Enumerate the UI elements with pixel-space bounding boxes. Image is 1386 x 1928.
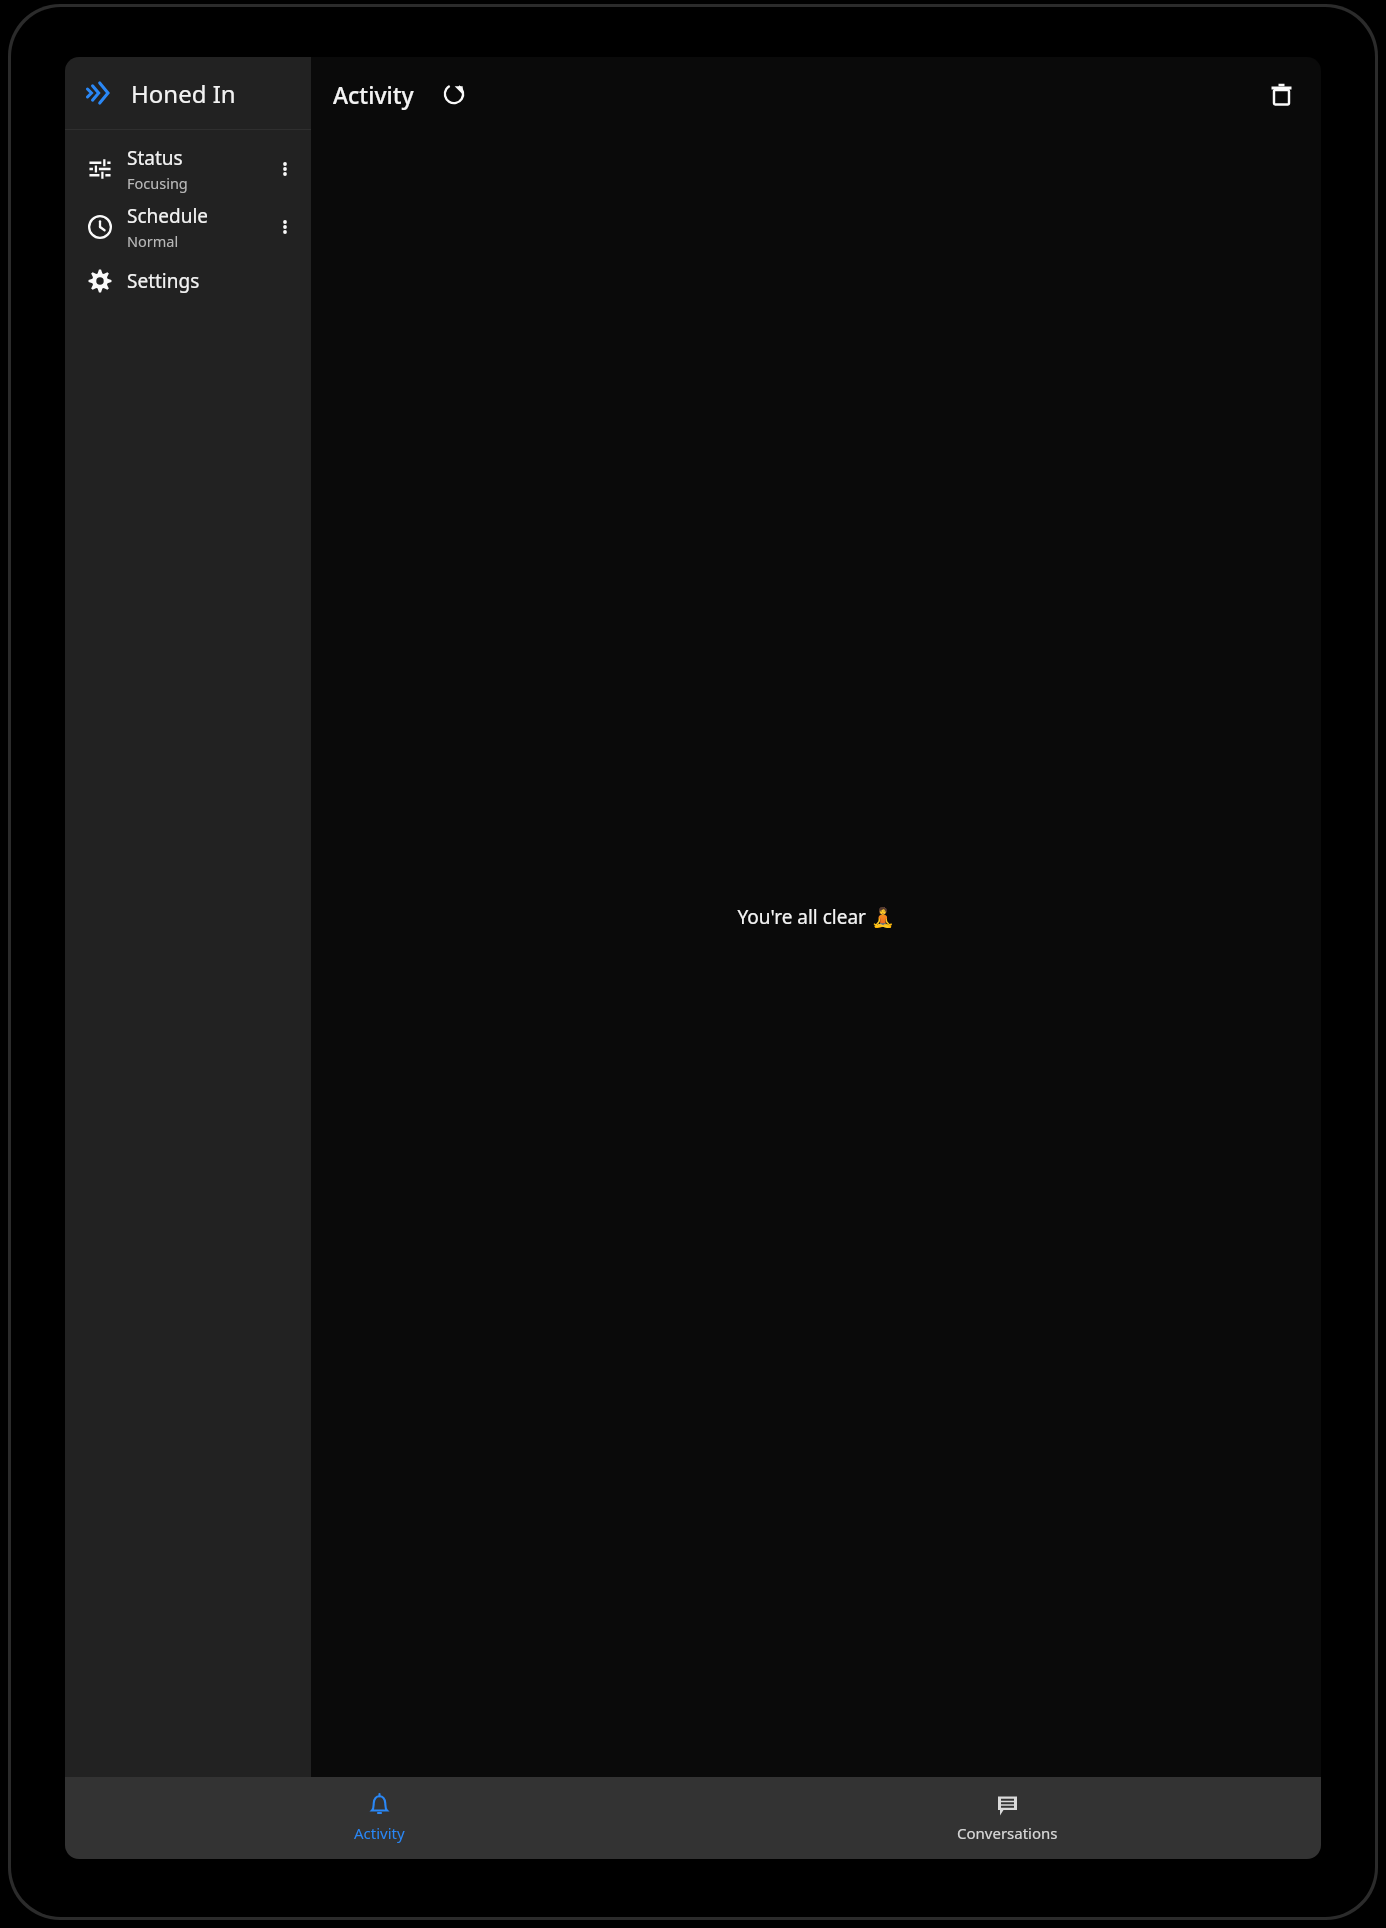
- button[interactable]: Schedule: [65, 198, 311, 256]
- button[interactable]: More options for Status: [267, 151, 303, 187]
- staticText: Schedule: [127, 203, 209, 229]
- staticText: Status: [127, 145, 183, 171]
- staticText: Honed In: [131, 77, 236, 110]
- staticText: You're all clear 🧘: [737, 904, 895, 930]
- button[interactable]: Refresh: [434, 74, 474, 114]
- button[interactable]: Conversations: [693, 1777, 1321, 1859]
- other: Status: [88, 157, 112, 181]
- button[interactable]: More options for Schedule: [267, 209, 303, 245]
- button[interactable]: Activity: [65, 1777, 693, 1859]
- staticText: Normal: [127, 231, 179, 251]
- other: Settings: [88, 269, 112, 293]
- button[interactable]: Honed In: [65, 57, 311, 129]
- staticText: Activity: [333, 79, 414, 110]
- staticText: Focusing: [127, 173, 188, 193]
- staticText: Settings: [127, 268, 200, 294]
- button[interactable]: Delete all: [1259, 72, 1303, 116]
- staticText: Activity: [354, 1823, 405, 1843]
- button[interactable]: Status: [65, 140, 311, 198]
- other: Schedule: [88, 215, 112, 239]
- button[interactable]: Settings: [65, 256, 311, 306]
- staticText: Conversations: [957, 1823, 1058, 1843]
